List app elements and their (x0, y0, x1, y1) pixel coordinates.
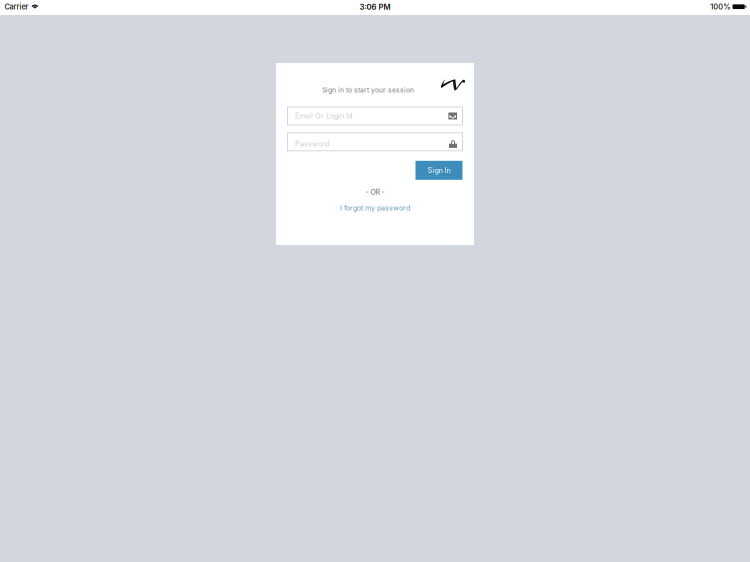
staticText: Email Or Login Id (295, 112, 352, 120)
button[interactable]: I forgot my password (276, 203, 474, 213)
button[interactable]: Sign In (415, 161, 462, 180)
staticText: 100% (710, 2, 730, 11)
staticText: I forgot my password (340, 204, 410, 212)
staticText: - OR - (365, 188, 384, 196)
staticText: Sign In (427, 166, 450, 175)
staticText: Password (295, 139, 329, 148)
staticText: Sign in to start your session (322, 86, 414, 94)
button[interactable]: Email Or Login Id (287, 107, 462, 125)
staticText: 3:06 PM (359, 2, 390, 12)
button[interactable]: Password (287, 133, 462, 151)
staticText: Carrier (4, 2, 28, 11)
